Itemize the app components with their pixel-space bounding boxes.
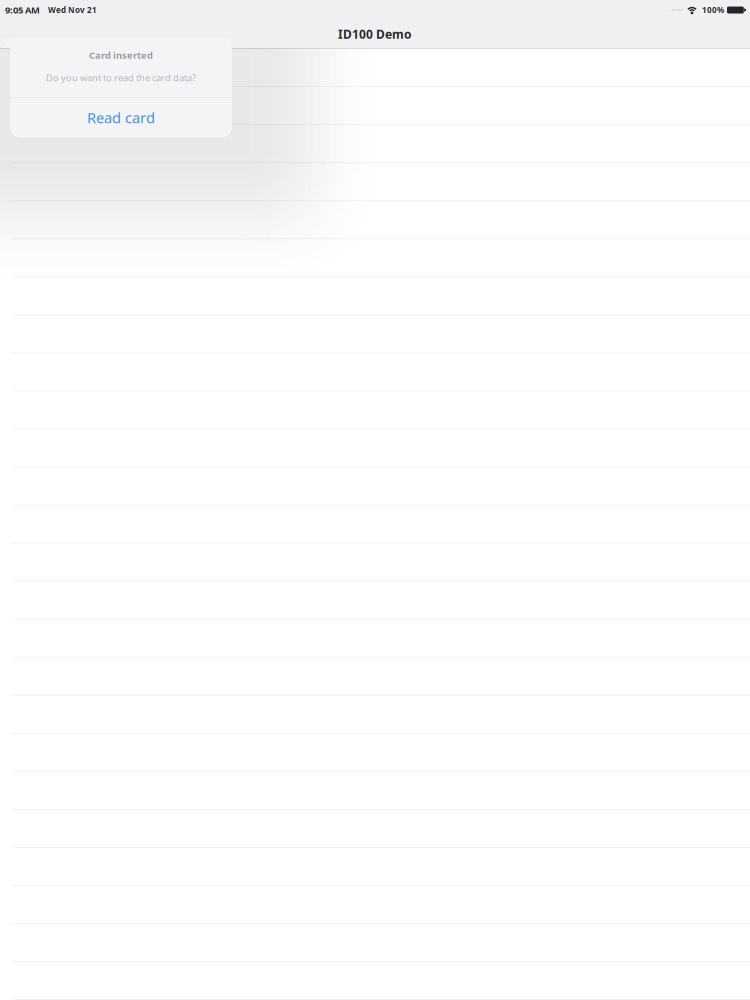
staticText: Wed Nov 21: [48, 5, 97, 15]
staticText: Read card: [87, 108, 155, 127]
staticText: ID100 Demo: [338, 26, 412, 42]
staticText: 9:05 AM: [5, 4, 40, 16]
staticText: Do you want to read the card data?: [46, 71, 196, 84]
staticText: 100%: [702, 5, 724, 15]
button[interactable]: List row: [0, 125, 750, 163]
button[interactable]: List row: [0, 163, 750, 201]
button[interactable]: List row: [0, 87, 750, 125]
button[interactable]: Read card: [10, 98, 232, 137]
button[interactable]: List row: [0, 49, 750, 87]
staticText: Card inserted: [89, 49, 153, 61]
button[interactable]: List row: [0, 201, 750, 239]
